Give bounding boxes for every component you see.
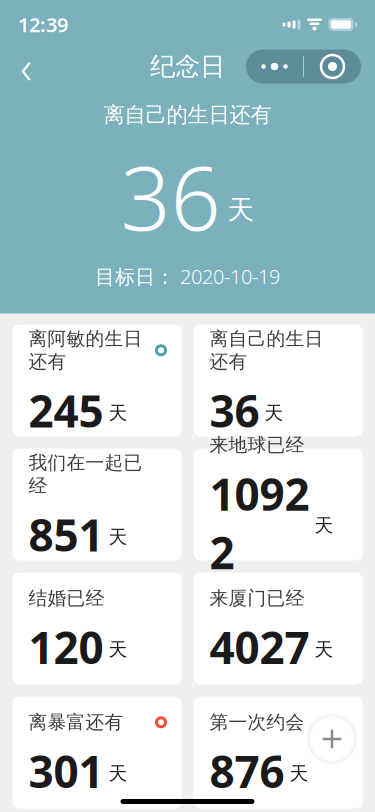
staticText: 天 [314, 638, 333, 661]
staticText: 120 [28, 618, 103, 676]
button[interactable]: 离自己的生日还有 [193, 324, 362, 436]
staticText: 来厦门已经 [209, 587, 304, 610]
staticText: 4027 [209, 618, 309, 676]
staticText: 天 [108, 638, 127, 661]
button[interactable]: Record [304, 49, 361, 83]
staticText: 离暴富还有 [28, 711, 123, 734]
staticText: 天 [108, 525, 127, 548]
staticText: 天 [108, 762, 127, 785]
staticText: 第一次约会 [209, 711, 304, 734]
staticText: 我们在一起已经 [28, 451, 142, 497]
staticText: 天 [227, 194, 254, 226]
staticText: 来地球已经 [209, 434, 304, 456]
staticText: 天 [289, 762, 308, 785]
staticText: 离自己的生日还有 [103, 102, 271, 128]
staticText: 离自己的生日还有 [209, 327, 323, 373]
staticText: 876 [209, 742, 284, 800]
staticText: 10922 [209, 464, 309, 581]
staticText: 离阿敏的生日还有 [28, 327, 142, 373]
button[interactable]: 离阿敏的生日还有 [12, 324, 181, 436]
staticText: 天 [314, 514, 333, 537]
staticText: 12:39 [18, 11, 68, 38]
staticText: 245 [28, 381, 103, 440]
button[interactable]: 离暴富还有 [12, 696, 181, 808]
staticText: 36 [209, 381, 259, 440]
staticText: 纪念日 [150, 51, 225, 82]
button[interactable]: 来厦门已经 [193, 572, 362, 684]
button[interactable]: 第一次约会 [193, 696, 362, 808]
staticText: 天 [264, 401, 283, 424]
staticText: 36 [120, 138, 220, 255]
button[interactable]: 我们在一起已经 [12, 448, 181, 560]
button[interactable]: Add anniversary [303, 710, 361, 768]
staticText: 301 [28, 742, 103, 800]
staticText: 851 [28, 505, 103, 564]
button[interactable]: 结婚已经 [12, 572, 181, 684]
staticText: 天 [108, 401, 127, 424]
button[interactable]: 来地球已经 [193, 448, 362, 560]
button[interactable]: More options [246, 49, 303, 83]
staticText: 结婚已经 [28, 587, 104, 610]
staticText: 目标日： 2020-10-19 [95, 263, 280, 289]
staticText: ‹ [20, 36, 32, 97]
button[interactable]: Back [3, 43, 49, 89]
